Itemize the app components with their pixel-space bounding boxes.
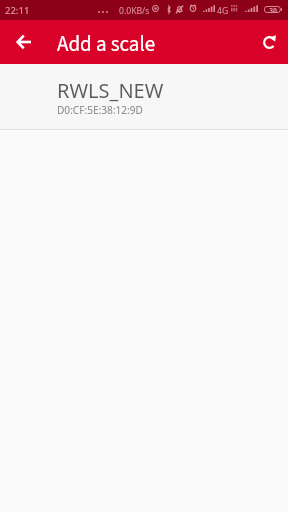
staticText: 30 (269, 6, 278, 13)
staticText: 4G (217, 5, 229, 17)
staticText: 0.0KB/s (119, 5, 150, 17)
button[interactable]: Refresh (244, 20, 288, 64)
button[interactable]: RWLS_NEW (0, 64, 288, 129)
staticText: RWLS_NEW (57, 77, 164, 104)
button[interactable]: Back (0, 20, 44, 64)
staticText: D0:CF:5E:38:12:9D (57, 103, 143, 117)
staticText: Add a scale (57, 29, 156, 59)
staticText: 22:11 (5, 4, 30, 17)
